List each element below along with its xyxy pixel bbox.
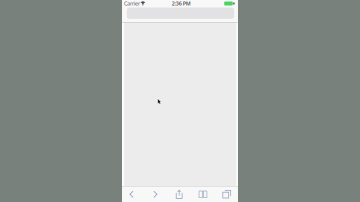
button[interactable]: Share bbox=[170, 187, 188, 202]
staticText: 2:36 PM bbox=[172, 0, 191, 7]
button[interactable]: Back bbox=[122, 187, 140, 202]
button[interactable]: Tabs bbox=[218, 187, 236, 202]
button[interactable]: Bookmarks bbox=[194, 187, 212, 202]
staticText: Carrier bbox=[124, 0, 140, 7]
button[interactable]: Forward bbox=[146, 187, 164, 202]
button[interactable]: Address and search bbox=[122, 7, 238, 19]
